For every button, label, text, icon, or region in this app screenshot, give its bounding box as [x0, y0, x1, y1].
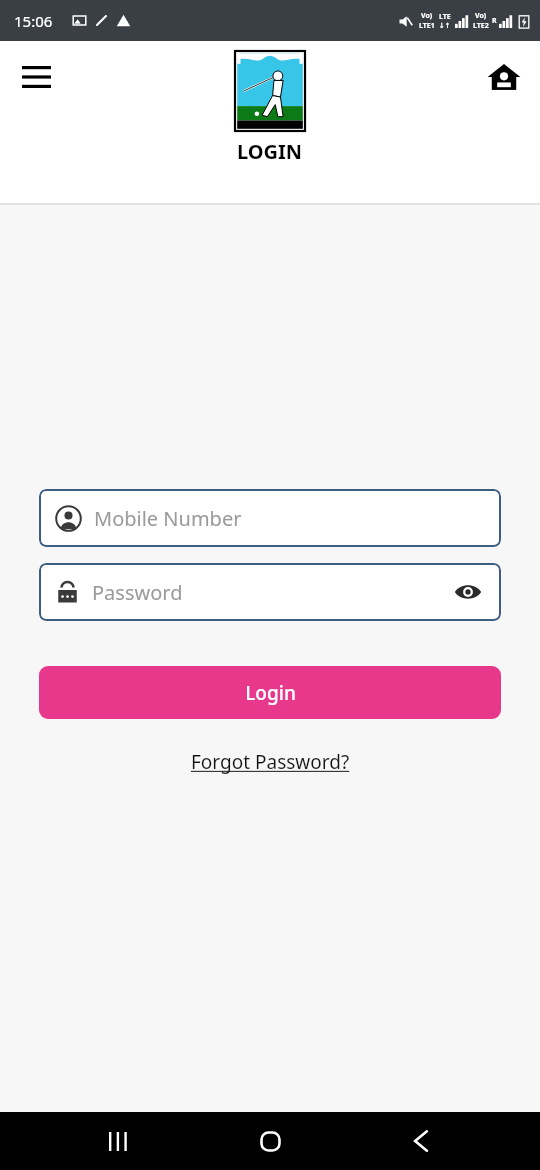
staticText: 15:06	[14, 11, 53, 31]
button[interactable]: Password	[39, 563, 501, 621]
staticText: Forgot Password?	[191, 749, 350, 775]
button[interactable]: Home	[480, 53, 528, 101]
staticText: LTE2	[473, 21, 489, 31]
staticText: Vo)	[421, 11, 433, 21]
staticText: Vo)	[475, 11, 487, 21]
button[interactable]: Back	[389, 1112, 453, 1170]
staticText: R	[492, 16, 497, 26]
button[interactable]: Mobile Number	[39, 489, 501, 547]
staticText: LOGIN	[237, 138, 303, 165]
staticText: Mobile Number	[94, 505, 485, 532]
staticText: LTE	[439, 12, 451, 22]
staticText: Login	[245, 680, 296, 706]
button[interactable]: Recents	[87, 1112, 151, 1170]
button[interactable]: Menu	[10, 51, 62, 103]
staticText: ↓↑	[439, 22, 451, 30]
staticText: Password	[92, 579, 451, 606]
button[interactable]: Login	[39, 666, 501, 719]
staticText: LTE1	[419, 21, 435, 31]
button[interactable]: Home	[238, 1112, 302, 1170]
button[interactable]: Show password	[451, 575, 485, 609]
button[interactable]: Forgot Password?	[183, 745, 358, 779]
